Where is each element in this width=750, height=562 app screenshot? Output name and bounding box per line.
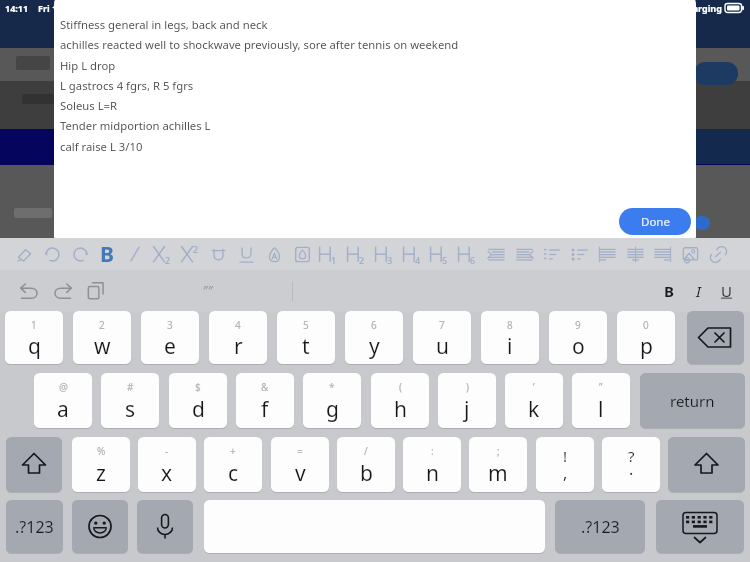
- staticText: x: [161, 459, 173, 488]
- button[interactable]: Paste: [78, 274, 112, 308]
- button[interactable]: Hide keyboard: [656, 500, 744, 553]
- staticText: z: [96, 459, 106, 488]
- staticText: #: [127, 380, 134, 394]
- button[interactable]: strike: [205, 239, 231, 269]
- button[interactable]: 6: [345, 311, 403, 364]
- button[interactable]: :: [403, 437, 461, 492]
- button[interactable]: 9: [549, 311, 607, 364]
- button[interactable]: textcolor: [261, 239, 287, 269]
- staticText: &: [261, 380, 269, 394]
- button[interactable]: Done: [619, 208, 691, 235]
- staticText: 3: [167, 318, 173, 332]
- staticText: 4: [235, 318, 241, 332]
- button[interactable]: redo: [67, 239, 93, 269]
- button[interactable]: h5: [427, 239, 453, 269]
- staticText: ’: [533, 380, 535, 394]
- button[interactable]: h4: [400, 239, 426, 269]
- button[interactable]: 4: [209, 311, 267, 364]
- button[interactable]: ): [438, 373, 496, 428]
- staticText: .?123: [581, 516, 620, 538]
- staticText: m: [488, 459, 508, 488]
- button[interactable]: ;: [469, 437, 527, 492]
- staticText: 8: [507, 318, 513, 332]
- button[interactable]: ?: [602, 437, 660, 492]
- button[interactable]: indent: [483, 239, 509, 269]
- button[interactable]: underline: [233, 239, 259, 269]
- staticText: s: [125, 395, 136, 424]
- button[interactable]: !: [536, 437, 594, 492]
- button[interactable]: B: [655, 274, 683, 308]
- button[interactable]: highlight: [289, 239, 315, 269]
- button[interactable]: ’: [505, 373, 563, 428]
- button[interactable]: #: [101, 373, 159, 428]
- button[interactable]: I: [684, 274, 712, 308]
- button[interactable]: bullist: [566, 239, 592, 269]
- button[interactable]: aligncenter: [622, 239, 648, 269]
- staticText: h: [394, 395, 407, 424]
- button[interactable]: eraser: [11, 239, 37, 269]
- button[interactable]: =: [271, 437, 329, 492]
- button[interactable]: 3: [141, 311, 199, 364]
- button[interactable]: .?123: [6, 500, 63, 553]
- button[interactable]: &: [236, 373, 294, 428]
- button[interactable]: ”: [572, 373, 630, 428]
- button[interactable]: (: [371, 373, 429, 428]
- staticText: k: [528, 395, 540, 424]
- staticText: 4: [415, 254, 421, 266]
- button[interactable]: *: [303, 373, 361, 428]
- button[interactable]: Emoji: [72, 500, 128, 553]
- staticText: $: [195, 380, 201, 394]
- button[interactable]: h6: [455, 239, 481, 269]
- button[interactable]: h3: [372, 239, 398, 269]
- button[interactable]: .?123: [555, 500, 645, 553]
- staticText: Soleus L=R: [60, 98, 118, 113]
- button[interactable]: Shift: [668, 437, 745, 492]
- button[interactable]: sup: [178, 239, 204, 269]
- button[interactable]: Undo: [12, 274, 46, 308]
- button[interactable]: Dictation: [137, 500, 193, 553]
- staticText: Charging: [681, 2, 722, 14]
- button[interactable]: italic: [122, 239, 148, 269]
- button[interactable]: Backspace: [687, 311, 744, 364]
- button[interactable]: Shift: [6, 437, 62, 492]
- staticText: w: [94, 332, 111, 361]
- staticText: r: [234, 332, 243, 361]
- button[interactable]: 7: [413, 311, 471, 364]
- button[interactable]: h1: [316, 239, 342, 269]
- button[interactable]: -: [138, 437, 196, 492]
- staticText: 5: [303, 318, 309, 332]
- button[interactable]: Redo: [45, 274, 79, 308]
- staticText: ;: [497, 444, 500, 458]
- button[interactable]: image: [677, 239, 703, 269]
- button[interactable]: 2: [73, 311, 131, 364]
- button[interactable]: %: [72, 437, 130, 492]
- button[interactable]: 0: [617, 311, 675, 364]
- button[interactable]: sub: [150, 239, 176, 269]
- button[interactable]: alignright: [649, 239, 675, 269]
- button[interactable]: bold: [94, 239, 120, 269]
- staticText: /: [364, 444, 368, 458]
- button[interactable]: undo: [39, 239, 65, 269]
- button[interactable]: 1: [5, 311, 63, 364]
- staticText: @: [59, 380, 68, 394]
- staticText: b: [360, 459, 373, 488]
- staticText: %: [97, 444, 106, 458]
- staticText: a: [57, 395, 69, 424]
- button[interactable]: U: [712, 274, 740, 308]
- button[interactable]: outdent: [511, 239, 537, 269]
- button[interactable]: +: [204, 437, 262, 492]
- button[interactable]: return: [640, 373, 745, 428]
- staticText: j: [464, 395, 470, 424]
- button[interactable]: @: [34, 373, 92, 428]
- button[interactable]: 8: [481, 311, 539, 364]
- button[interactable]: numlist: [538, 239, 564, 269]
- button[interactable]: alignleft: [594, 239, 620, 269]
- button[interactable]: link: [705, 239, 731, 269]
- staticText: o: [572, 332, 585, 361]
- button[interactable]: /: [337, 437, 395, 492]
- button[interactable]: h2: [344, 239, 370, 269]
- staticText: =: [297, 444, 303, 458]
- button[interactable]: 5: [277, 311, 335, 364]
- button[interactable]: $: [169, 373, 227, 428]
